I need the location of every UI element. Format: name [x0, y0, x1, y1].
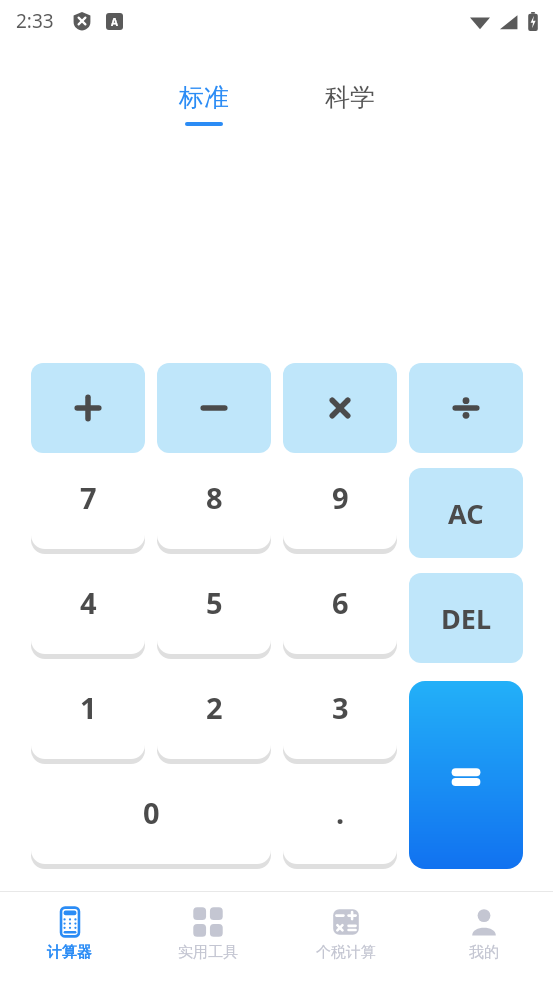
- button[interactable]: 3: [283, 676, 397, 764]
- staticText: 标准: [179, 82, 229, 113]
- staticText: 7: [80, 478, 97, 517]
- button[interactable]: .: [283, 781, 397, 869]
- button[interactable]: AC: [409, 468, 523, 558]
- staticText: 8: [206, 478, 223, 517]
- staticText: A: [111, 15, 118, 29]
- button[interactable]: Subtract: [157, 363, 271, 453]
- staticText: 2:33: [16, 8, 54, 34]
- staticText: 6: [332, 583, 349, 622]
- staticText: 实用工具: [178, 943, 238, 962]
- staticText: 5: [206, 583, 223, 622]
- staticText: 4: [80, 583, 97, 622]
- button[interactable]: 标准: [167, 78, 241, 130]
- button[interactable]: 6: [283, 571, 397, 659]
- button[interactable]: 9: [283, 466, 397, 554]
- button[interactable]: 0: [31, 781, 271, 869]
- staticText: 1: [80, 688, 97, 727]
- staticText: 科学: [325, 82, 375, 113]
- staticText: 个税计算: [316, 943, 376, 962]
- button[interactable]: 实用工具: [139, 892, 277, 984]
- button[interactable]: 1: [31, 676, 145, 764]
- staticText: 0: [143, 793, 160, 832]
- button[interactable]: 个税计算: [277, 892, 415, 984]
- button[interactable]: Multiply: [283, 363, 397, 453]
- button[interactable]: 7: [31, 466, 145, 554]
- staticText: 计算器: [47, 943, 92, 962]
- button[interactable]: 科学: [313, 78, 387, 130]
- staticText: DEL: [441, 600, 491, 637]
- staticText: AC: [448, 495, 484, 532]
- button[interactable]: DEL: [409, 573, 523, 663]
- button[interactable]: Divide: [409, 363, 523, 453]
- staticText: 9: [332, 478, 349, 517]
- button[interactable]: 5: [157, 571, 271, 659]
- button[interactable]: 2: [157, 676, 271, 764]
- button[interactable]: 计算器: [0, 892, 139, 984]
- button[interactable]: 我的: [415, 892, 553, 984]
- button[interactable]: Equals: [409, 681, 523, 869]
- button[interactable]: 4: [31, 571, 145, 659]
- button[interactable]: Add: [31, 363, 145, 453]
- staticText: 2: [206, 688, 223, 727]
- staticText: .: [336, 793, 345, 832]
- staticText: 3: [332, 688, 349, 727]
- staticText: 我的: [469, 943, 499, 962]
- button[interactable]: 8: [157, 466, 271, 554]
